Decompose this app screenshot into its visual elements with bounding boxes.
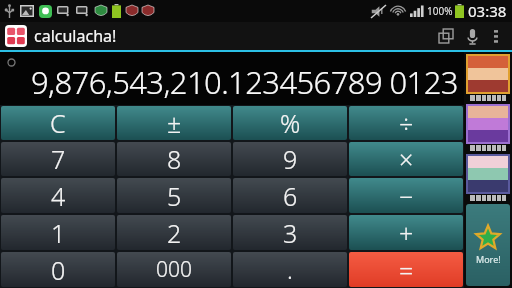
button[interactable]: % <box>233 106 347 140</box>
staticText: C <box>50 106 66 140</box>
button[interactable]: + <box>349 215 463 250</box>
button[interactable]: 2 <box>117 215 231 250</box>
staticText: More! <box>476 253 501 265</box>
button[interactable]: 1 <box>1 215 115 250</box>
button[interactable]: 000 <box>117 252 231 287</box>
button[interactable]: ± <box>117 106 231 140</box>
button[interactable]: 4 <box>1 178 115 213</box>
button[interactable]: C <box>1 106 115 140</box>
button[interactable]: ÷ <box>349 106 463 140</box>
button[interactable]: . <box>233 252 347 287</box>
staticText: 6 <box>283 179 298 213</box>
button[interactable]: 9 <box>233 142 347 176</box>
button[interactable]: 5 <box>117 178 231 213</box>
staticText: calculacha! <box>34 25 117 47</box>
staticText: × <box>399 142 414 176</box>
button[interactable]: 8 <box>117 142 231 176</box>
staticText: 3 <box>283 216 298 250</box>
staticText: . <box>287 253 293 286</box>
staticText: 1 <box>51 216 66 250</box>
staticText: 100% <box>427 4 453 18</box>
staticText: % <box>280 106 301 140</box>
staticText: 0 <box>51 253 66 287</box>
button[interactable]: 7 <box>1 142 115 176</box>
button[interactable]: = <box>349 252 463 287</box>
button[interactable]: More options <box>485 25 507 47</box>
staticText: 7 <box>51 142 66 176</box>
button[interactable]: 0 <box>1 252 115 287</box>
staticText: 8 <box>167 142 182 176</box>
button[interactable]: × <box>349 142 463 176</box>
button[interactable]: Copy <box>433 23 459 49</box>
button[interactable]: 3 <box>233 215 347 250</box>
staticText: ÷ <box>399 106 414 140</box>
staticText: 4 <box>51 179 66 213</box>
staticText: 9,876,543,210.123456789 0123 <box>31 61 458 103</box>
button[interactable]: Advertisement <box>468 156 508 192</box>
staticText: + <box>399 216 414 250</box>
button[interactable]: More! <box>466 204 510 286</box>
staticText: = <box>399 253 414 287</box>
button[interactable]: Advertisement <box>468 56 508 92</box>
staticText: 000 <box>156 255 192 284</box>
staticText: 5 <box>167 179 182 213</box>
staticText: 9 <box>283 142 298 176</box>
button[interactable]: Voice input <box>459 23 485 49</box>
button[interactable]: − <box>349 178 463 213</box>
button[interactable]: 6 <box>233 178 347 213</box>
staticText: 03:38 <box>468 1 507 21</box>
staticText: ± <box>167 106 182 140</box>
staticText: − <box>399 179 414 213</box>
staticText: 2 <box>167 216 182 250</box>
button[interactable]: Advertisement <box>468 106 508 142</box>
